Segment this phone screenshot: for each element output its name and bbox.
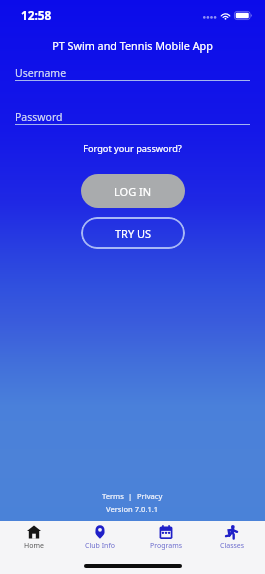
button[interactable]: Home — [0, 521, 67, 574]
staticText: | — [124, 491, 137, 501]
button[interactable]: TRY US — [81, 217, 185, 249]
staticText: LOG IN — [114, 184, 152, 199]
button[interactable]: Username — [15, 66, 250, 81]
staticText: Home — [24, 541, 44, 551]
staticText: 12:58 — [21, 7, 52, 23]
button[interactable]: LOG IN — [81, 174, 185, 208]
button[interactable]: Privacy — [137, 491, 163, 501]
staticText: Classes — [220, 541, 245, 551]
button[interactable]: Password — [15, 110, 250, 125]
staticText: Password — [15, 110, 63, 124]
button[interactable]: Terms — [102, 491, 124, 501]
staticText: Version 7.0.1.1 — [106, 504, 159, 514]
staticText: Club Info — [85, 541, 116, 551]
staticText: Username — [15, 66, 67, 80]
button[interactable]: Programs — [133, 521, 199, 574]
staticText: TRY US — [115, 226, 152, 241]
button[interactable]: Club Info — [67, 521, 133, 574]
button[interactable]: Classes — [199, 521, 265, 574]
staticText: PT Swim and Tennis Mobile App — [0, 38, 265, 53]
button[interactable]: Forgot your password? — [81, 142, 184, 155]
staticText: Programs — [150, 541, 183, 551]
